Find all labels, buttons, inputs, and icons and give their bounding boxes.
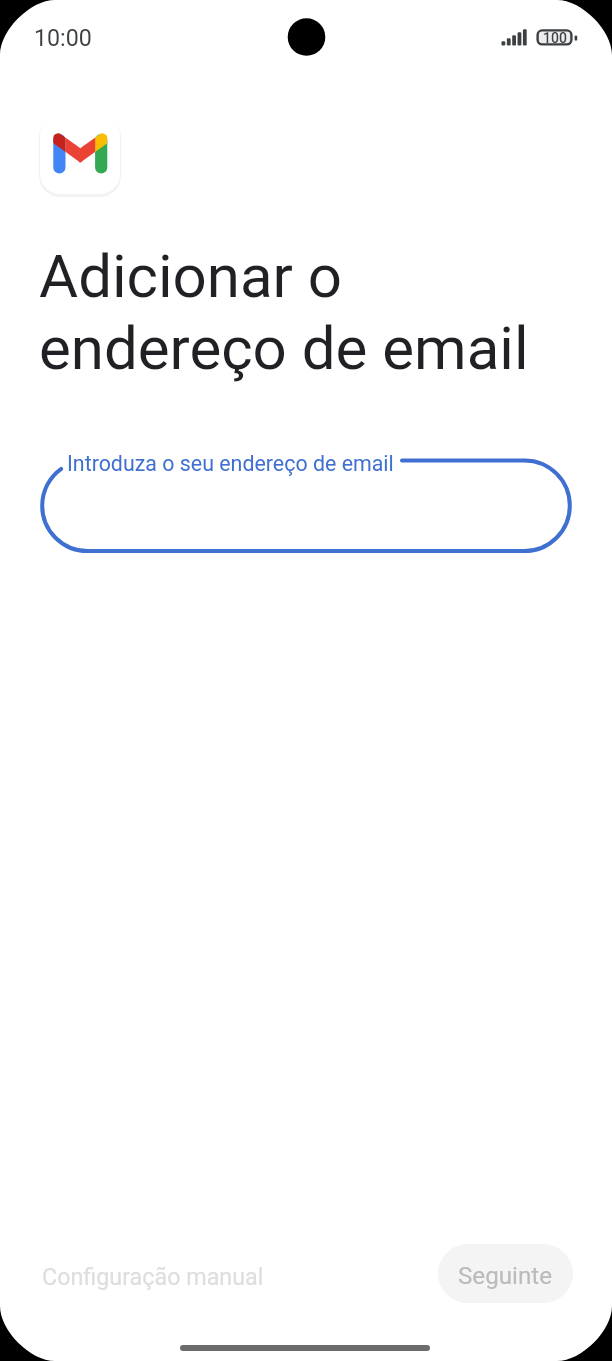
staticText: 100 [543,30,567,46]
button[interactable]: Configuração manual [28,1247,278,1306]
staticText: Adicionar o endereço de email [39,241,529,383]
staticText: Configuração manual [42,1263,264,1290]
staticText: 10:00 [34,24,92,51]
staticText: Seguinte [458,1262,553,1290]
other: Gmail [40,114,120,194]
staticText: Introduza o seu endereço de email [67,451,394,476]
button[interactable] [42,460,570,551]
button[interactable]: Seguinte [438,1244,573,1303]
